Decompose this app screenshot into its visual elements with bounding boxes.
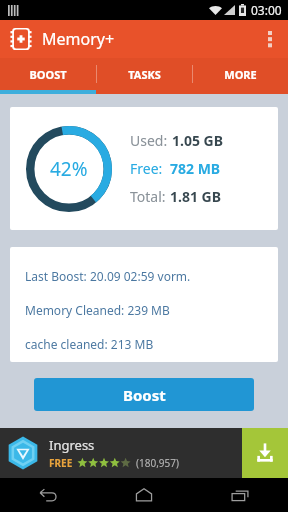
staticText: Boost [123, 385, 166, 405]
staticText: 782 MB [170, 159, 221, 178]
staticText: Used: [130, 131, 168, 150]
button[interactable]: Back [0, 478, 96, 512]
staticText: Ingress [49, 436, 95, 454]
staticText: Total: [130, 187, 166, 206]
button[interactable]: TASKS [97, 58, 192, 90]
staticText: cache cleaned: 213 MB [25, 336, 154, 352]
staticText: Memory Cleaned: 239 MB [25, 302, 170, 318]
button[interactable]: More options [252, 21, 288, 57]
button[interactable]: BOOST [0, 58, 96, 90]
staticText: Free: [130, 159, 166, 178]
staticText: BOOST [29, 67, 67, 82]
staticText: Memory+ [42, 28, 115, 50]
staticText: (180,957) [136, 456, 179, 470]
staticText: 1.05 GB [172, 131, 224, 150]
button[interactable]: Home [96, 478, 192, 512]
staticText: Last Boost: 20.09 02:59 vorm. [25, 268, 191, 284]
button[interactable]: Recent apps [192, 478, 288, 512]
staticText: MORE [224, 67, 257, 82]
button[interactable]: Boost [34, 378, 254, 411]
button[interactable]: Install [242, 428, 288, 478]
staticText: TASKS [128, 67, 161, 82]
button[interactable]: MORE [193, 58, 288, 90]
staticText: 03:00 [251, 2, 282, 18]
staticText: 1.81 GB [170, 187, 222, 206]
staticText: 42% [50, 156, 88, 182]
button[interactable]: Ingress [0, 428, 288, 478]
staticText: FREE [49, 456, 73, 470]
